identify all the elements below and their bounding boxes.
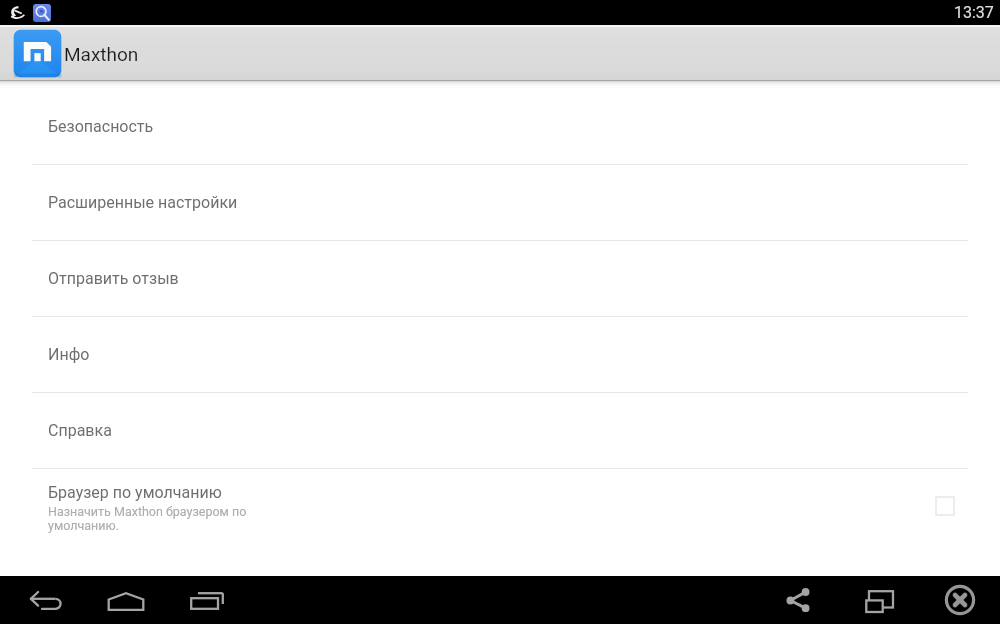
button[interactable]: Share xyxy=(774,576,822,624)
button[interactable]: Back xyxy=(22,577,70,624)
button[interactable]: Браузер по умолчанию xyxy=(0,469,1000,544)
button[interactable]: Maxthon xyxy=(9,25,66,81)
staticText: 13:37 xyxy=(954,3,994,22)
button[interactable]: Multi window xyxy=(856,577,904,624)
staticText: Расширенные настройки xyxy=(48,193,238,212)
staticText: Инфо xyxy=(48,345,90,364)
button[interactable]: Инфо xyxy=(0,317,1000,392)
staticText: Отправить отзыв xyxy=(48,269,179,288)
button[interactable]: Recent apps xyxy=(183,577,231,624)
button[interactable]: Notification xyxy=(9,6,25,19)
staticText: Maxthon xyxy=(64,43,139,65)
button[interactable]: Search notification xyxy=(33,4,51,22)
button[interactable]: Отправить отзыв xyxy=(0,241,1000,316)
button[interactable]: Home xyxy=(102,577,150,624)
button[interactable]: Set as default browser xyxy=(932,493,958,519)
staticText: Браузер по умолчанию xyxy=(48,483,222,502)
button[interactable]: Справка xyxy=(0,393,1000,468)
staticText: Назначить Maxthon браузером по умолчанию… xyxy=(48,504,255,533)
staticText: Безопасность xyxy=(48,117,154,136)
button[interactable]: Безопасность xyxy=(0,89,1000,164)
button[interactable]: Close xyxy=(936,576,984,624)
button[interactable]: Расширенные настройки xyxy=(0,165,1000,240)
staticText: Справка xyxy=(48,421,112,440)
